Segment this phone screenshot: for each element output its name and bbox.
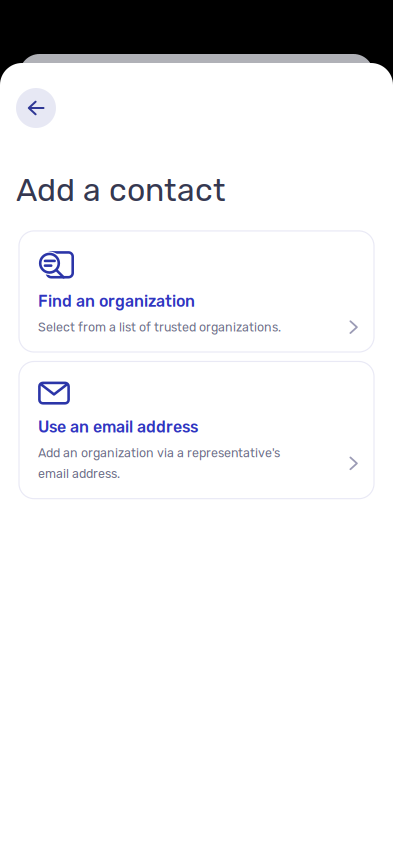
button[interactable]: Use an email address (19, 361, 374, 499)
staticText: Select from a list of trusted organizati… (38, 320, 281, 334)
button[interactable]: Back (16, 88, 56, 128)
staticText: Use an email address (38, 418, 198, 437)
staticText: Add a contact (16, 171, 226, 209)
staticText: Find an organization (38, 292, 195, 311)
staticText: Add an organization via a representative… (38, 446, 280, 481)
button[interactable]: Find an organization (19, 231, 374, 352)
